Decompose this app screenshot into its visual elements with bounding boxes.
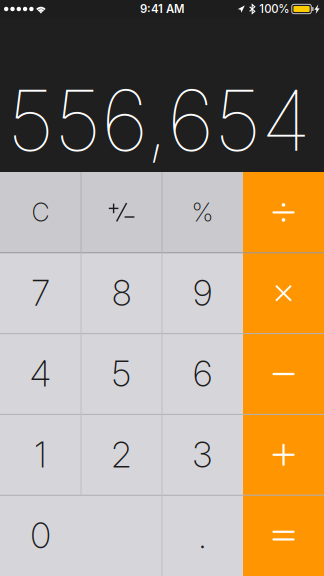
button[interactable]: 7 <box>0 253 81 334</box>
button[interactable]: Subtract <box>243 334 324 414</box>
staticText: 9 <box>193 272 212 314</box>
button[interactable]: Divide <box>243 172 324 253</box>
button[interactable]: 3 <box>162 414 243 495</box>
button[interactable]: 8 <box>81 253 162 334</box>
staticText: % <box>191 197 213 228</box>
staticText: 0 <box>30 515 50 556</box>
staticText: . <box>198 515 206 556</box>
button[interactable]: % <box>162 172 243 253</box>
button[interactable]: Multiply <box>243 253 324 334</box>
button[interactable]: Add <box>243 414 324 495</box>
button[interactable]: 4 <box>0 334 81 414</box>
button[interactable]: 2 <box>81 414 162 495</box>
button[interactable]: 6 <box>162 334 243 414</box>
button[interactable]: Equals <box>243 495 324 576</box>
staticText: 1 <box>34 434 46 476</box>
button[interactable]: 5 <box>81 334 162 414</box>
staticText: C <box>31 197 49 228</box>
button[interactable]: 9 <box>162 253 243 334</box>
button[interactable]: . <box>162 495 243 576</box>
staticText: 3 <box>192 434 212 476</box>
staticText: 2 <box>111 434 131 476</box>
button[interactable]: C <box>0 172 81 253</box>
staticText: 100% <box>259 2 289 16</box>
button[interactable]: 0 <box>0 495 162 576</box>
staticText: 4 <box>30 353 51 395</box>
staticText: 8 <box>112 272 131 314</box>
button[interactable]: 1 <box>0 414 81 495</box>
staticText: 9:41 AM <box>140 2 184 16</box>
button[interactable]: Plus or minus <box>81 172 162 253</box>
staticText: 556,654 <box>7 69 311 171</box>
staticText: 7 <box>31 272 49 314</box>
staticText: 5 <box>112 353 131 395</box>
staticText: 6 <box>193 353 212 395</box>
